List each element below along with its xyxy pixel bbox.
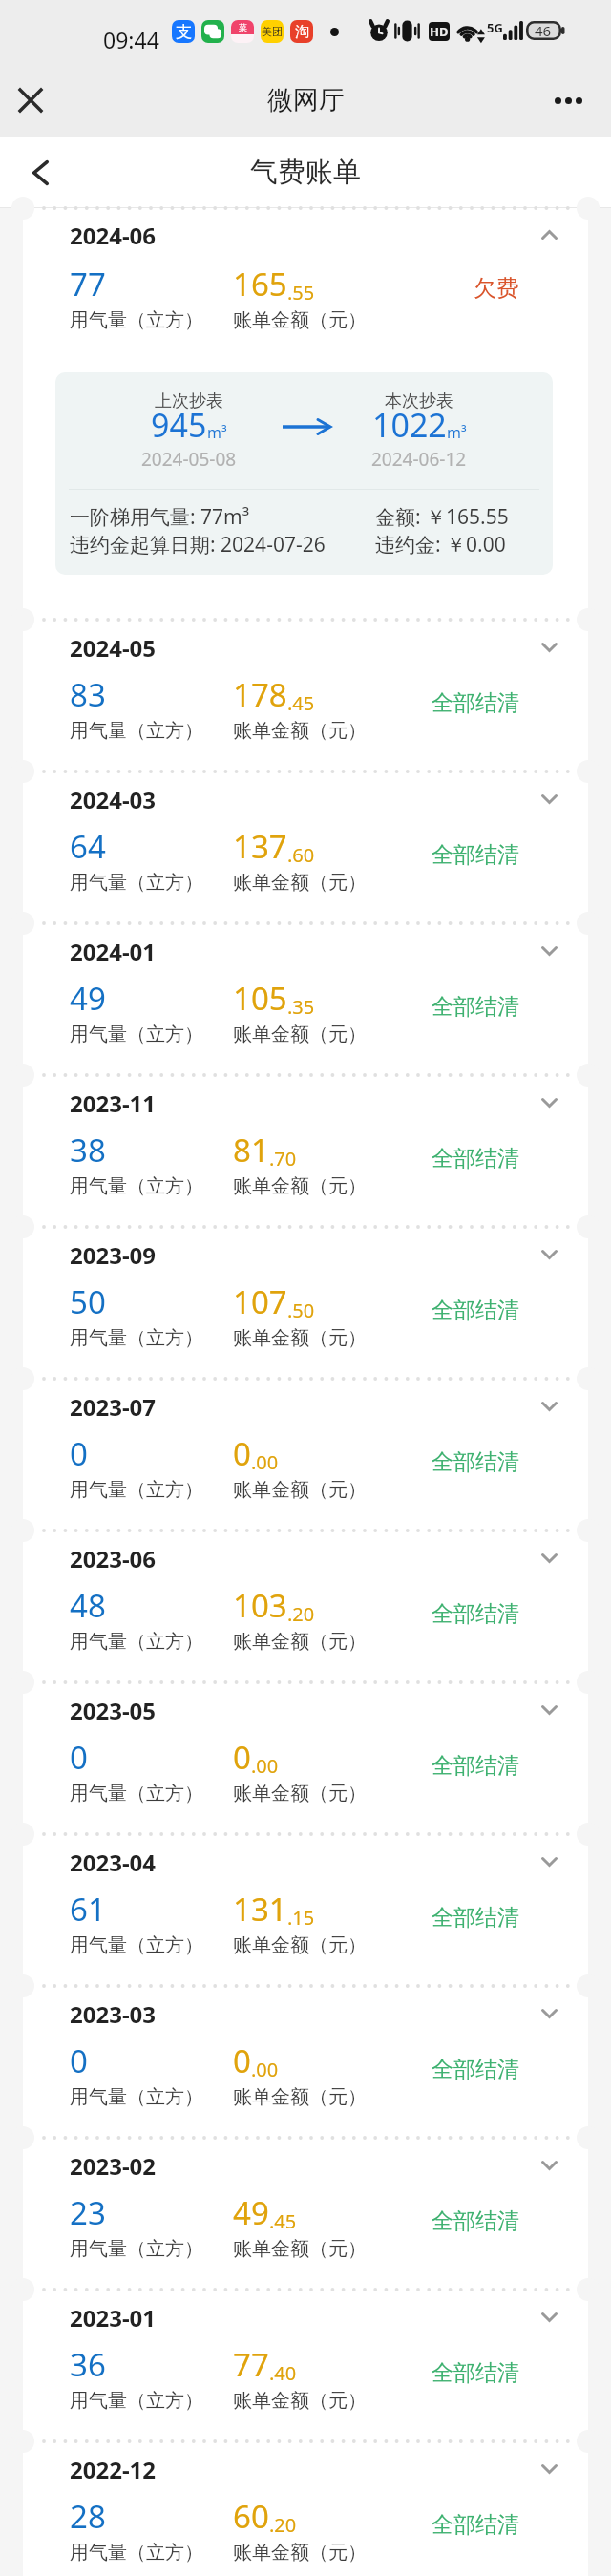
staticText: 0 <box>233 2039 251 2082</box>
button[interactable]: 2024-03 <box>23 771 588 923</box>
staticText: 105 <box>233 977 287 1020</box>
button[interactable]: 2023-05 <box>23 1682 588 1834</box>
staticText: 账单金额（元） <box>233 1630 367 1654</box>
staticText: .60 <box>287 842 315 868</box>
button[interactable]: 2024-05 <box>23 620 588 771</box>
staticText: 77 <box>70 263 106 306</box>
staticText: 61 <box>70 1888 106 1931</box>
staticText: 全部结清 <box>432 993 519 1021</box>
button[interactable]: 2023-06 <box>23 1531 588 1682</box>
staticText: .55 <box>287 280 315 306</box>
staticText: 账单金额（元） <box>233 1782 367 1805</box>
staticText: 全部结清 <box>432 689 519 717</box>
staticText: 用气量（立方） <box>70 1933 203 1957</box>
staticText: 账单金额（元） <box>233 719 367 743</box>
button[interactable]: 2023-07 <box>23 1379 588 1531</box>
staticText: 全部结清 <box>432 2511 519 2539</box>
staticText: .70 <box>269 1146 297 1172</box>
staticText: 全部结清 <box>432 1145 519 1172</box>
staticText: 账单金额（元） <box>233 2541 367 2565</box>
staticText: 淘 <box>295 23 309 41</box>
staticText: 2023-02 <box>70 2150 157 2181</box>
staticText: 103 <box>233 1584 287 1627</box>
staticText: .50 <box>287 1298 315 1323</box>
staticText: 本次抄表 <box>385 391 453 412</box>
staticText: 全部结清 <box>432 1448 519 1476</box>
staticText: 微网厅 <box>267 84 345 116</box>
staticText: 欠费 <box>474 274 519 303</box>
staticText: HD <box>430 23 449 40</box>
button[interactable]: 2023-11 <box>23 1075 588 1227</box>
staticText: 账单金额（元） <box>233 1326 367 1350</box>
staticText: 气费账单 <box>250 155 361 190</box>
staticText: 23 <box>70 2191 106 2234</box>
staticText: 2024-06 <box>70 220 157 250</box>
button[interactable]: More options <box>544 76 592 124</box>
staticText: 用气量（立方） <box>70 2237 203 2261</box>
staticText: 64 <box>70 825 106 868</box>
button[interactable]: 2023-09 <box>23 1227 588 1379</box>
staticText: .45 <box>269 2208 297 2234</box>
button[interactable]: 2023-04 <box>23 1834 588 1986</box>
staticText: .35 <box>287 994 315 1020</box>
button[interactable]: 2024-01 <box>23 923 588 1075</box>
staticText: 137 <box>233 825 287 868</box>
staticText: 1022 <box>372 403 447 447</box>
staticText: 账单金额（元） <box>233 1933 367 1957</box>
staticText: 2024-06-12 <box>371 447 467 472</box>
staticText: 131 <box>233 1888 287 1931</box>
staticText: 全部结清 <box>432 1904 519 1932</box>
staticText: 50 <box>70 1280 106 1323</box>
staticText: 用气量（立方） <box>70 1174 203 1198</box>
staticText: 2023-06 <box>70 1543 157 1573</box>
staticText: 美团 <box>262 25 283 38</box>
staticText: 菜 <box>239 22 247 32</box>
staticText: 2024-05-08 <box>141 447 237 472</box>
staticText: 全部结清 <box>432 1600 519 1628</box>
staticText: 0 <box>233 1432 251 1475</box>
staticText: m³ <box>447 422 467 443</box>
staticText: 09:44 <box>103 25 159 54</box>
staticText: 用气量（立方） <box>70 308 203 332</box>
staticText: .40 <box>269 2360 297 2386</box>
staticText: 2023-05 <box>70 1695 157 1725</box>
staticText: 用气量（立方） <box>70 2085 203 2109</box>
staticText: 2023-01 <box>70 2302 157 2333</box>
button[interactable]: 2023-03 <box>23 1986 588 2138</box>
staticText: 36 <box>70 2343 106 2386</box>
staticText: 账单金额（元） <box>233 1023 367 1046</box>
staticText: 2023-09 <box>70 1239 157 1270</box>
staticText: 0 <box>70 1736 88 1779</box>
staticText: 用气量（立方） <box>70 1326 203 1350</box>
staticText: 107 <box>233 1280 287 1323</box>
staticText: 一阶梯用气量: 77m³ <box>70 503 250 531</box>
staticText: 全部结清 <box>432 2207 519 2235</box>
staticText: 60 <box>233 2495 269 2538</box>
staticText: 账单金额（元） <box>233 308 367 332</box>
staticText: 28 <box>70 2495 106 2538</box>
button[interactable]: 2023-01 <box>23 2290 588 2441</box>
staticText: 0 <box>70 1432 88 1475</box>
staticText: 2023-03 <box>70 1998 157 2029</box>
staticText: .45 <box>287 690 315 716</box>
staticText: 81 <box>233 1129 269 1172</box>
staticText: 用气量（立方） <box>70 1630 203 1654</box>
staticText: 2023-04 <box>70 1847 157 1877</box>
staticText: 账单金额（元） <box>233 1478 367 1502</box>
button[interactable]: Back <box>17 149 65 197</box>
staticText: 用气量（立方） <box>70 871 203 895</box>
staticText: 全部结清 <box>432 2056 519 2083</box>
staticText: 账单金额（元） <box>233 871 367 895</box>
staticText: 账单金额（元） <box>233 2237 367 2261</box>
staticText: .00 <box>251 1753 279 1779</box>
staticText: 0 <box>70 2039 88 2082</box>
staticText: 用气量（立方） <box>70 1023 203 1046</box>
button[interactable]: 2022-12 <box>23 2441 588 2576</box>
staticText: 支 <box>176 22 192 42</box>
button[interactable]: 2023-02 <box>23 2138 588 2290</box>
staticText: 全部结清 <box>432 841 519 869</box>
button[interactable]: Close <box>7 76 54 124</box>
staticText: 全部结清 <box>432 1297 519 1324</box>
staticText: 违约金: ￥0.00 <box>375 531 506 559</box>
staticText: 2023-11 <box>70 1087 157 1118</box>
